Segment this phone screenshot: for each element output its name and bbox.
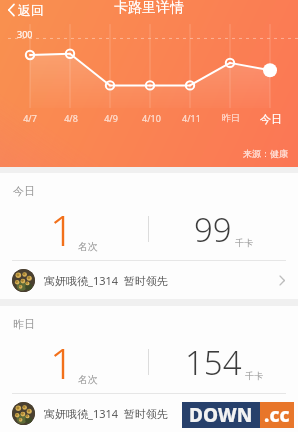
staticText: 4/10 (142, 112, 161, 124)
staticText: 名次 (78, 240, 98, 253)
staticText: 4/9 (104, 112, 118, 124)
staticText: 寓妍哦徺_1314 暂时领先 (44, 273, 168, 288)
button[interactable]: 寓妍哦徺_1314 暂时领先 (0, 261, 298, 299)
staticText: DOWN (189, 402, 253, 428)
staticText: 1 (50, 334, 74, 391)
staticText: 千卡 (235, 237, 253, 248)
staticText: 名次 (78, 373, 98, 386)
staticText: 今日 (13, 184, 35, 198)
staticText: 卡路里详情 (114, 0, 184, 17)
staticText: 昨日 (222, 112, 240, 123)
staticText: 1 (50, 201, 74, 258)
staticText: 4/8 (64, 112, 78, 124)
button[interactable]: 返回 (0, 0, 52, 20)
staticText: 今日 (260, 112, 282, 126)
staticText: 154 (185, 340, 242, 385)
staticText: 寓妍哦徺_1314 暂时领先 (44, 406, 168, 421)
staticText: 昨日 (13, 317, 35, 331)
staticText: 返回 (18, 2, 44, 18)
staticText: 千卡 (245, 370, 263, 381)
staticText: 300 (17, 28, 33, 40)
button[interactable]: 寓妍哦徺_1314 暂时领先 (0, 394, 298, 432)
staticText: 来源：健康 (243, 148, 288, 159)
staticText: 99 (194, 207, 232, 252)
staticText: 4/7 (23, 112, 37, 124)
staticText: 4/11 (182, 112, 201, 124)
staticText: .cc (264, 402, 290, 428)
